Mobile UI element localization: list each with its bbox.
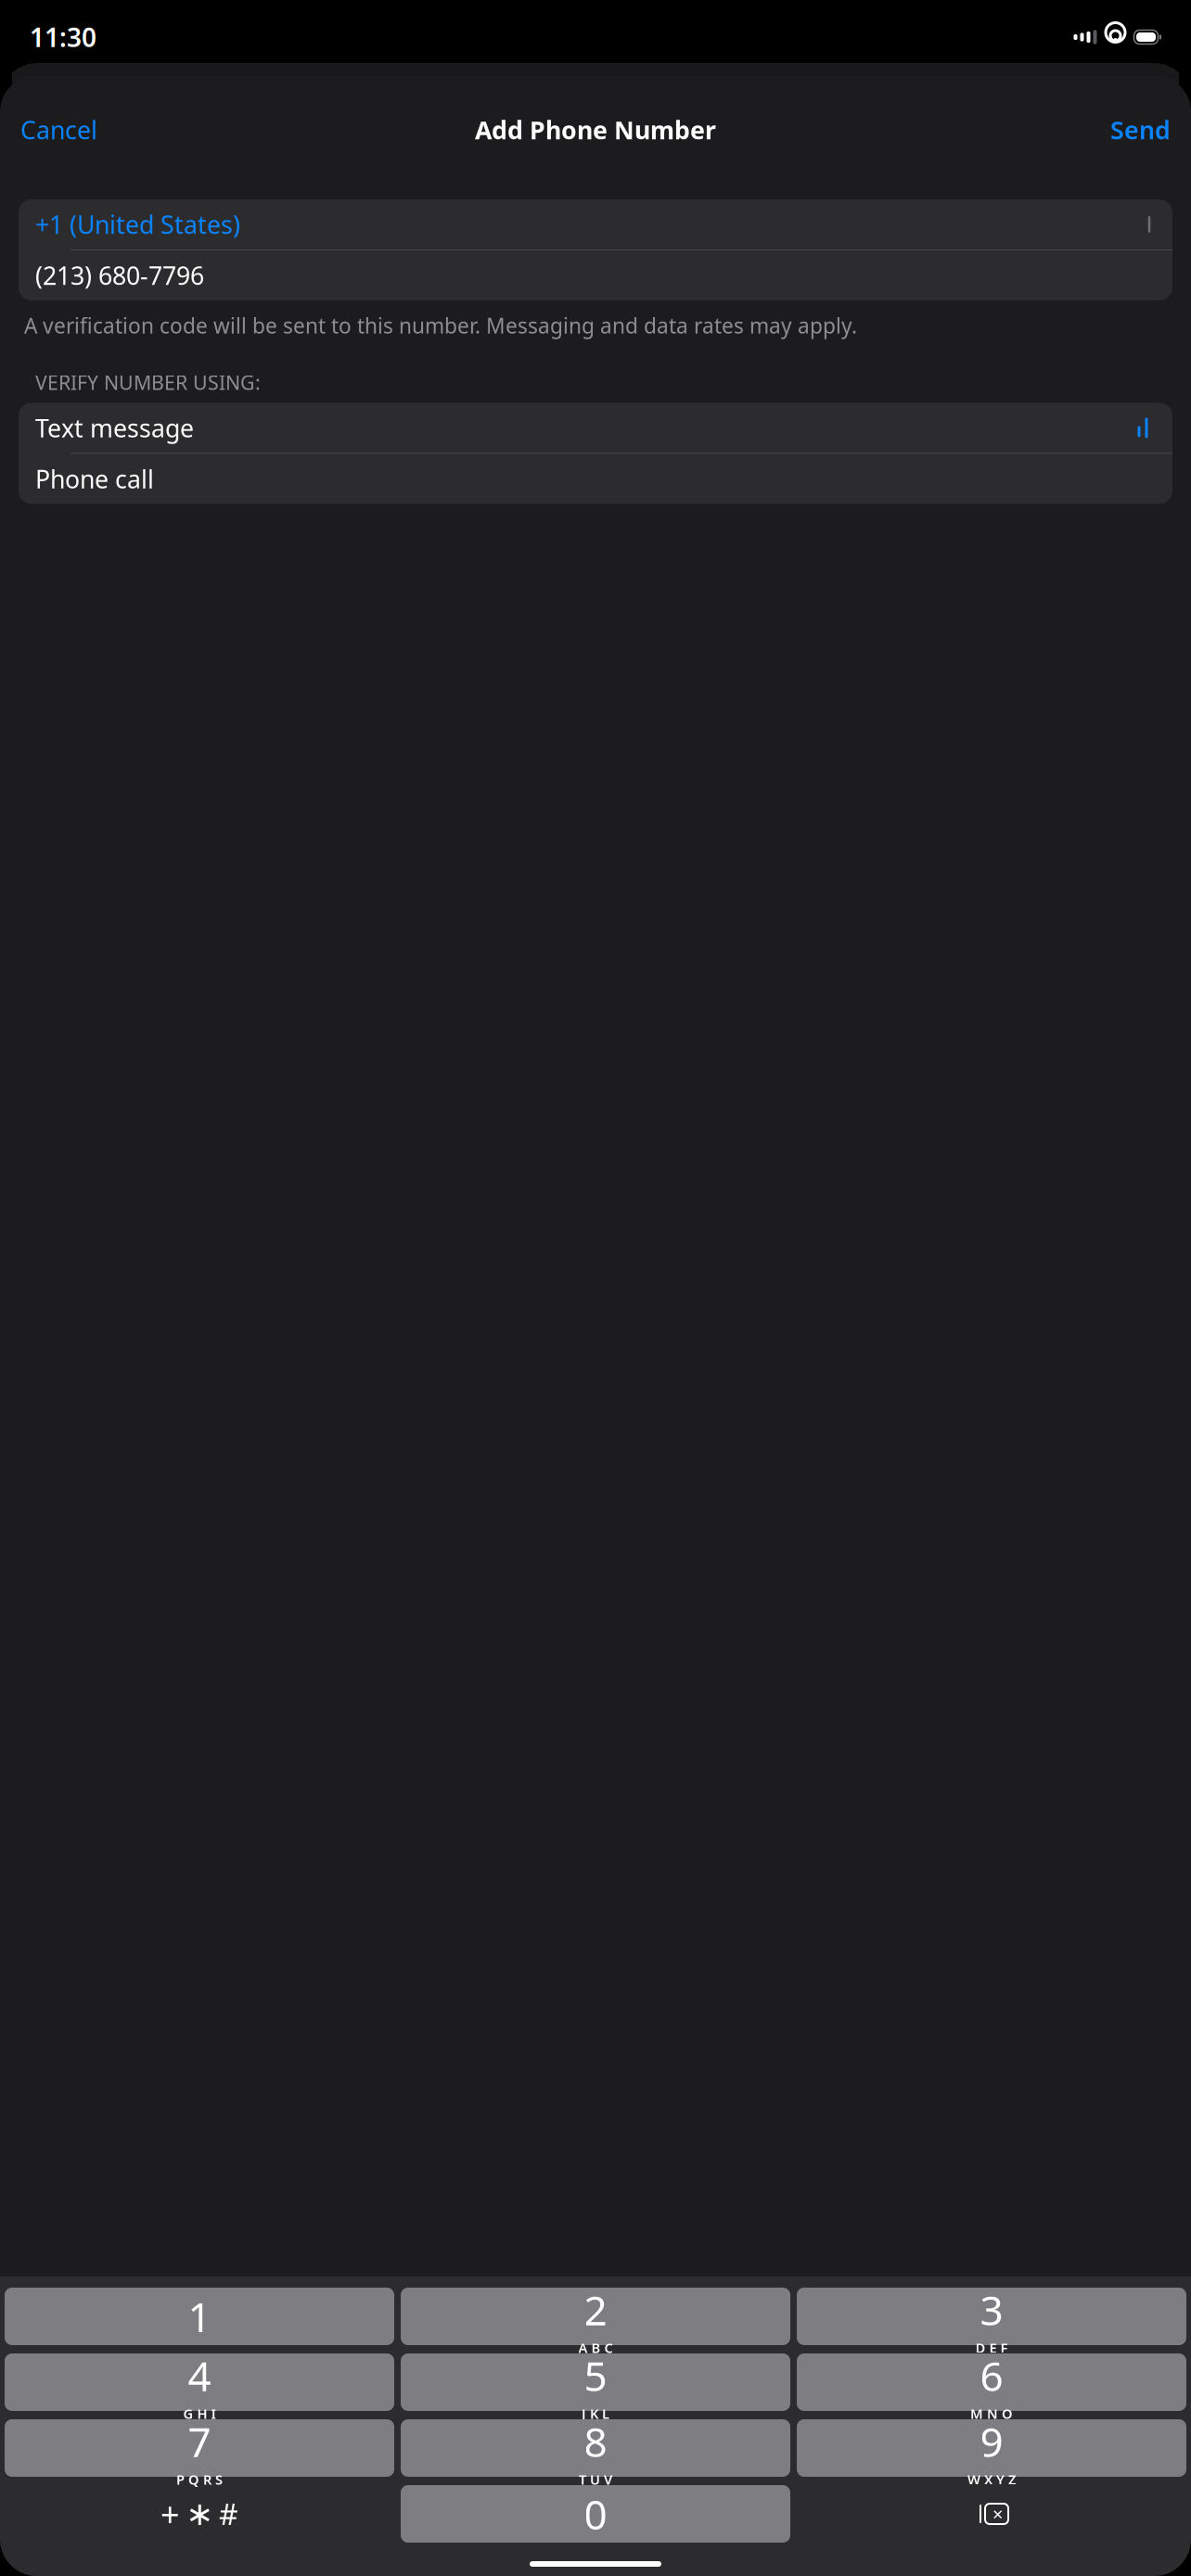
button[interactable]: Phone call xyxy=(19,454,1172,504)
staticText: 0 xyxy=(584,2487,607,2541)
button[interactable]: 6 xyxy=(797,2353,1186,2411)
button[interactable]: Symbols xyxy=(5,2485,394,2543)
staticText: 3 xyxy=(980,2283,1003,2337)
staticText: G H I xyxy=(183,2404,216,2423)
staticText: +1 (United States) xyxy=(35,208,240,241)
staticText: ∗ xyxy=(186,2495,213,2533)
staticText: W X Y Z xyxy=(967,2470,1016,2488)
staticText: 6 xyxy=(980,2348,1003,2403)
staticText: M N O xyxy=(970,2404,1013,2423)
button[interactable]: Delete xyxy=(797,2485,1186,2543)
staticText: 5 xyxy=(584,2348,607,2403)
button[interactable]: 1 xyxy=(5,2288,394,2345)
staticText: T U V xyxy=(579,2470,612,2488)
staticText: A B C xyxy=(578,2339,613,2357)
staticText: Phone call xyxy=(35,462,154,495)
staticText: A verification code will be sent to this… xyxy=(24,312,857,339)
button[interactable]: Text message xyxy=(19,403,1172,453)
button[interactable]: 8 xyxy=(401,2419,790,2477)
button[interactable]: 4 xyxy=(5,2353,394,2411)
staticText: Send xyxy=(1110,113,1171,146)
staticText: 9 xyxy=(980,2414,1003,2468)
staticText: 1 xyxy=(188,2289,211,2343)
button[interactable]: Cancel xyxy=(0,100,118,159)
button[interactable]: 5 xyxy=(401,2353,790,2411)
staticText: + xyxy=(160,2492,180,2536)
button[interactable]: 7 xyxy=(5,2419,394,2477)
staticText: Text message xyxy=(35,411,194,444)
staticText: 8 xyxy=(584,2414,607,2468)
button[interactable]: 2 xyxy=(401,2288,790,2345)
staticText: 7 xyxy=(188,2414,211,2468)
button[interactable]: 0 xyxy=(401,2485,790,2543)
button[interactable]: 9 xyxy=(797,2419,1186,2477)
button[interactable]: +1 (United States) xyxy=(19,199,1172,249)
button[interactable]: 3 xyxy=(797,2288,1186,2345)
staticText: 11:30 xyxy=(30,20,96,54)
staticText: (213) 680-7796 xyxy=(35,259,204,292)
staticText: J K L xyxy=(582,2404,609,2423)
staticText: Cancel xyxy=(20,113,97,146)
staticText: D E F xyxy=(975,2339,1008,2357)
staticText: 4 xyxy=(188,2348,211,2403)
button[interactable]: Send xyxy=(1090,100,1191,159)
staticText: P Q R S xyxy=(176,2470,223,2488)
staticText: Add Phone Number xyxy=(475,113,716,146)
staticText: VERIFY NUMBER USING: xyxy=(35,369,261,395)
staticText: # xyxy=(219,2494,238,2534)
button[interactable]: (213) 680-7796 xyxy=(19,250,1172,300)
staticText: × xyxy=(992,2502,1003,2526)
staticText: 2 xyxy=(584,2283,607,2337)
